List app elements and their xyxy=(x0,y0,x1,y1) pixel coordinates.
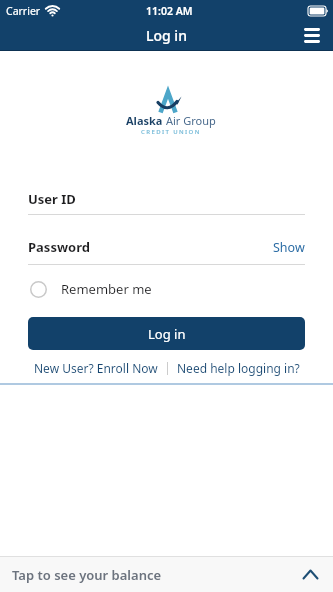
staticText: New User? Enroll Now xyxy=(34,360,158,376)
button[interactable]: Tap to see your balance xyxy=(0,557,333,592)
staticText: User ID xyxy=(28,190,76,208)
button[interactable]: Show xyxy=(273,239,305,256)
staticText: CREDIT UNION xyxy=(141,128,201,136)
button[interactable]: New User? Enroll Now xyxy=(34,360,158,376)
staticText: Tap to see your balance xyxy=(12,566,162,584)
button[interactable]: Remember me xyxy=(30,280,152,298)
button[interactable]: Log in xyxy=(28,317,305,350)
button[interactable] xyxy=(304,28,320,43)
staticText: Air Group xyxy=(166,113,216,128)
staticText: Carrier xyxy=(6,4,41,18)
staticText: Log in xyxy=(148,325,186,343)
button[interactable]: Need help logging in? xyxy=(177,360,300,376)
staticText: Password xyxy=(28,238,90,256)
staticText: 11:02 AM xyxy=(146,4,193,18)
staticText: Remember me xyxy=(61,280,152,298)
staticText: Log in xyxy=(146,26,187,45)
staticText: Need help logging in? xyxy=(177,360,300,376)
staticText: Show xyxy=(273,239,305,256)
staticText: Alaska xyxy=(126,113,166,128)
